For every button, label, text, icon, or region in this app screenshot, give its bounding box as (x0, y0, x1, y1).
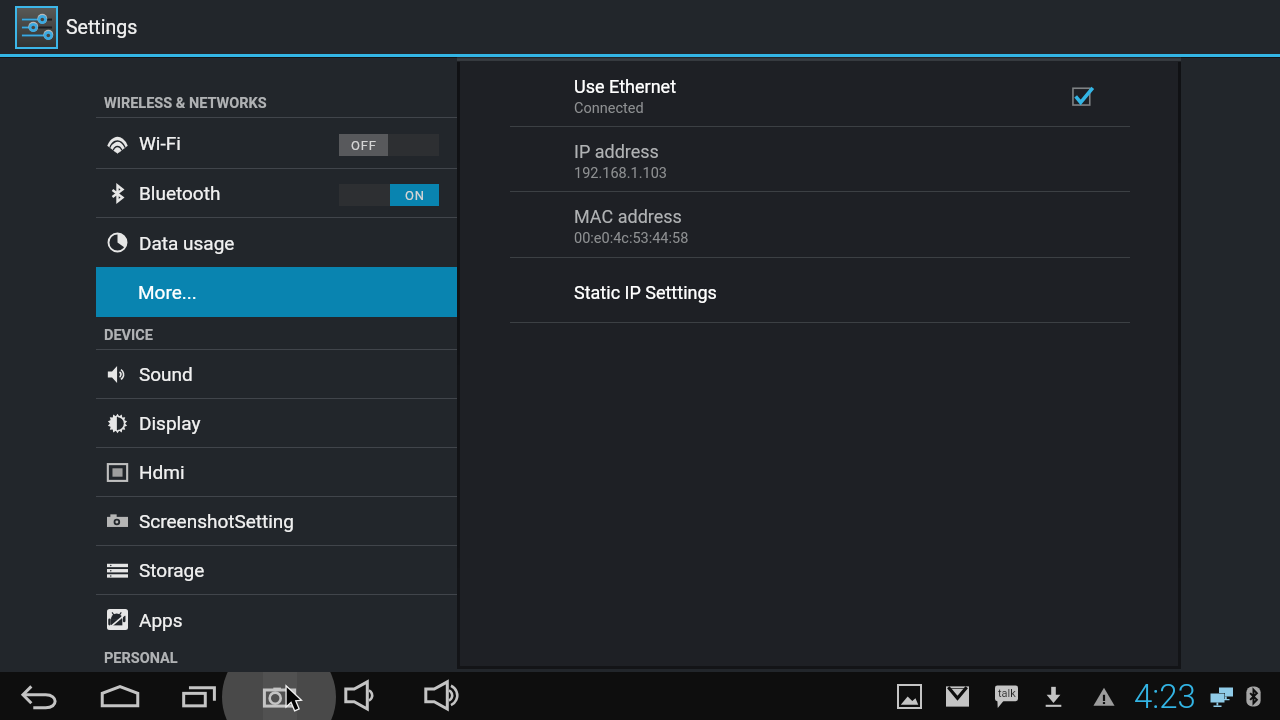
button[interactable]: Volume up (415, 672, 463, 720)
button[interactable]: Data usage (0, 217, 458, 268)
staticText: ON (405, 188, 425, 203)
staticText: WIRELESS & NETWORKS (104, 95, 267, 112)
button[interactable]: Recent apps (176, 672, 224, 720)
staticText: Settings (66, 16, 138, 39)
button[interactable]: Volume down (335, 672, 383, 720)
staticText: Storage (139, 559, 205, 581)
staticText: More... (138, 281, 197, 303)
staticText: Data usage (139, 232, 235, 254)
button[interactable]: Use Ethernet (460, 62, 1178, 126)
button[interactable]: Apps (0, 594, 458, 645)
button[interactable]: MAC address (460, 192, 1178, 257)
staticText: ScreenshotSetting (139, 510, 295, 532)
button[interactable]: More... (96, 267, 457, 317)
button[interactable]: Bluetooth (0, 168, 458, 218)
staticText: Hdmi (139, 461, 185, 483)
staticText: Wi-Fi (139, 132, 181, 154)
staticText: IP address (574, 141, 659, 162)
button[interactable]: Use Ethernet (1062, 72, 1106, 116)
staticText: PERSONAL (104, 650, 178, 667)
staticText: Connected (574, 100, 644, 117)
button[interactable]: Static IP Setttings (460, 258, 1178, 322)
staticText: OFF (351, 138, 377, 153)
button[interactable]: Switch off (339, 134, 439, 156)
staticText: 00:e0:4c:53:44:58 (574, 230, 689, 247)
button[interactable]: ScreenshotSetting (0, 496, 458, 546)
staticText: talk (998, 687, 1016, 700)
button[interactable]: Storage (0, 545, 458, 595)
staticText: Use Ethernet (574, 76, 677, 97)
staticText: 192.168.1.103 (574, 165, 667, 182)
button[interactable]: Back (16, 672, 64, 720)
staticText: Static IP Setttings (574, 282, 717, 303)
button[interactable]: Display (0, 398, 458, 448)
button[interactable]: Sound (0, 349, 458, 399)
staticText: Apps (139, 609, 183, 631)
staticText: 4:23 (1134, 677, 1196, 716)
button[interactable]: Switch on (339, 184, 439, 206)
button[interactable]: Hdmi (0, 447, 458, 497)
staticText: Sound (139, 363, 193, 385)
button[interactable]: Home (96, 672, 144, 720)
button[interactable]: Wi-Fi (0, 117, 458, 169)
other: Settings (15, 6, 58, 49)
button[interactable]: Screenshot (256, 672, 304, 720)
staticText: Display (139, 412, 201, 434)
staticText: MAC address (574, 206, 682, 227)
staticText: DEVICE (104, 327, 153, 344)
staticText: Bluetooth (139, 182, 221, 204)
button[interactable]: IP address (460, 127, 1178, 191)
